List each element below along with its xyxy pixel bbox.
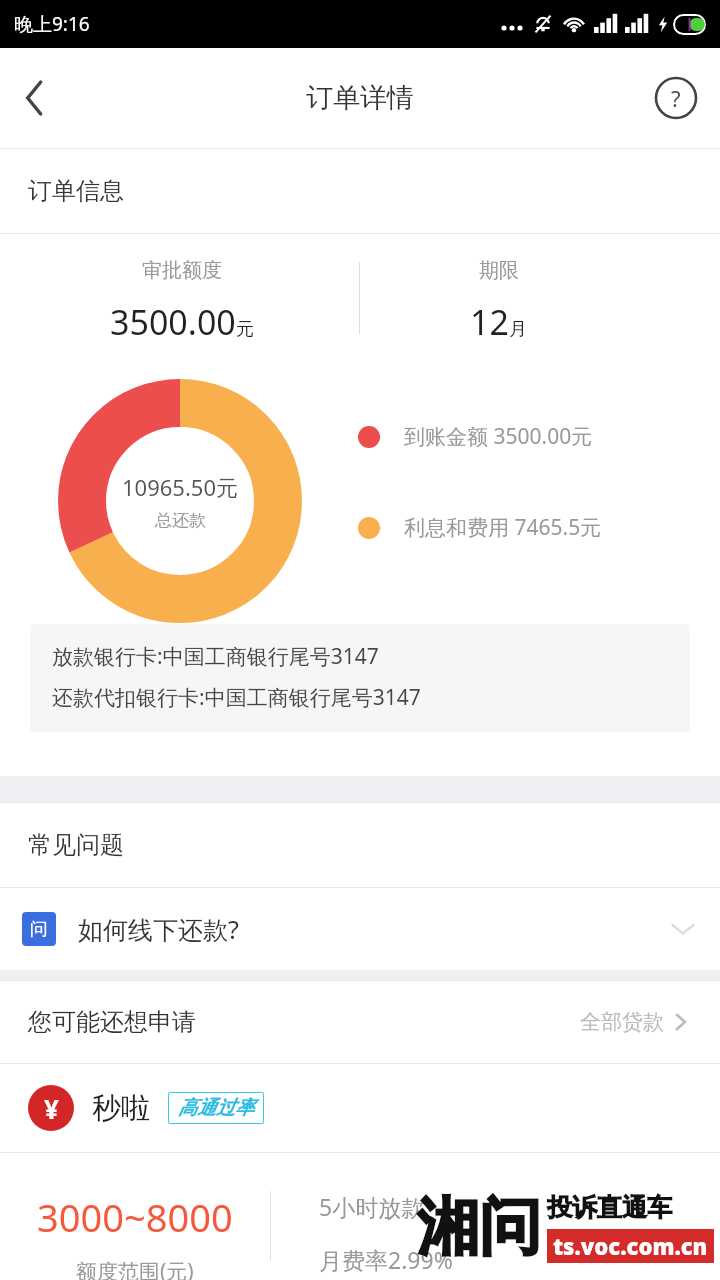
button[interactable]: ¥ bbox=[0, 1064, 720, 1280]
staticText: 常见问题 bbox=[28, 830, 124, 860]
staticText: 还款代扣银行卡:中国工商银行尾号3147 bbox=[52, 683, 421, 712]
staticText: 您可能还想申请 bbox=[28, 1007, 576, 1037]
staticText: 利息和费用 7465.5元 bbox=[404, 513, 602, 542]
staticText: ? bbox=[671, 83, 681, 113]
staticText: 10965.50元 bbox=[122, 472, 238, 502]
staticText: 审批额度 bbox=[142, 258, 222, 283]
staticText: 3500.00 bbox=[110, 299, 236, 345]
staticText: 订单信息 bbox=[28, 176, 124, 206]
button[interactable]: 返回 bbox=[0, 63, 70, 133]
staticText: 湘问 bbox=[417, 1188, 541, 1266]
button[interactable]: 全部贷款 bbox=[576, 1005, 692, 1039]
staticText: 秒啦 bbox=[92, 1090, 150, 1127]
staticText: 高通过率 bbox=[178, 1096, 254, 1120]
staticText: 5小时放款 bbox=[319, 1191, 425, 1222]
button[interactable]: 问 bbox=[0, 888, 720, 970]
staticText: 投诉直通车 bbox=[547, 1192, 672, 1223]
staticText: 元 bbox=[236, 318, 254, 341]
staticText: 月费率2.99% bbox=[319, 1244, 453, 1275]
staticText: 晚上9:16 bbox=[14, 11, 90, 37]
staticText: 订单详情 bbox=[306, 81, 414, 115]
button[interactable]: 帮助 bbox=[650, 72, 702, 124]
staticText: 3000~8000 bbox=[37, 1191, 233, 1243]
staticText: 月 bbox=[509, 318, 527, 341]
staticText: 到账金额 3500.00元 bbox=[404, 422, 593, 451]
staticText: 总还款 bbox=[155, 510, 206, 531]
staticText: 放款银行卡:中国工商银行尾号3147 bbox=[52, 642, 379, 671]
staticText: 额度范围(元) bbox=[76, 1257, 194, 1280]
staticText: 问 bbox=[30, 918, 48, 941]
staticText: 期限 bbox=[479, 258, 519, 283]
staticText: 全部贷款 bbox=[580, 1009, 664, 1035]
staticText: ¥ bbox=[44, 1091, 59, 1126]
staticText: 12 bbox=[470, 299, 509, 345]
staticText: ts.voc.com.cn bbox=[553, 1231, 708, 1261]
staticText: 如何线下还款? bbox=[78, 912, 668, 946]
